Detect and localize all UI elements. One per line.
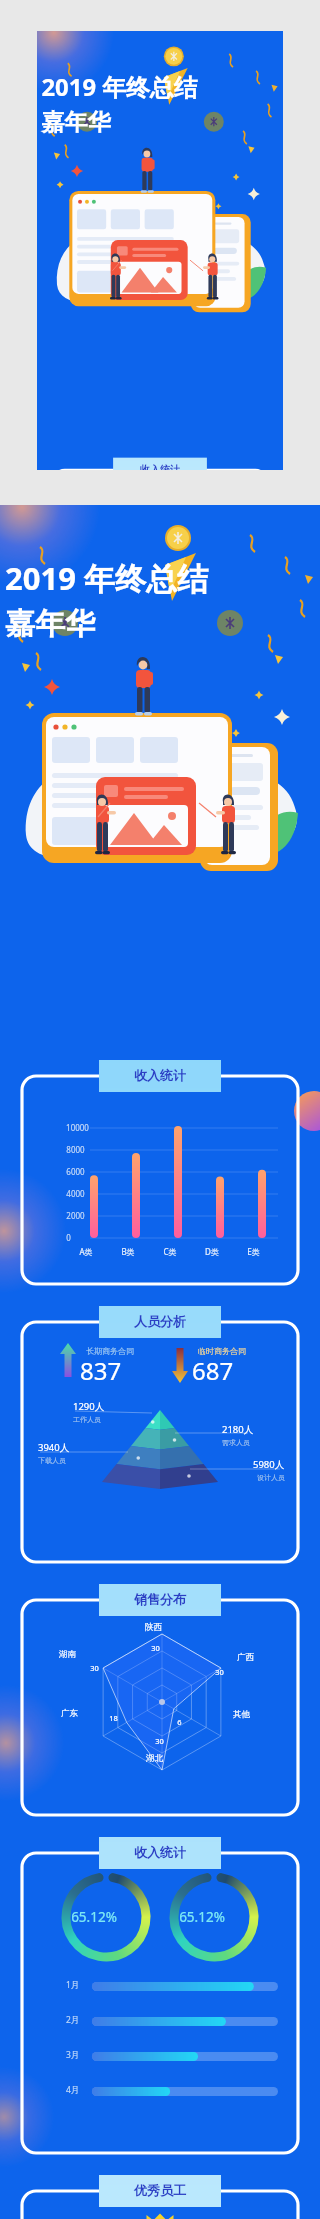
staticText: 长期商务合同	[86, 1346, 134, 1356]
staticText: 嘉年华	[41, 108, 111, 137]
staticText: 销售分布	[99, 1591, 221, 1607]
button[interactable]: 销售分布	[99, 1584, 221, 1616]
staticText: 人员分析	[99, 1313, 221, 1329]
button[interactable]: 人员分析	[99, 1306, 221, 1338]
staticText: 2180人	[222, 1423, 254, 1436]
staticText: 65.12%	[71, 1908, 117, 1926]
staticText: 1290人	[73, 1400, 105, 1413]
button[interactable]: 2019 年终总结	[0, 505, 320, 2219]
staticText: A类	[79, 1246, 93, 1257]
staticText: 30	[155, 1736, 164, 1746]
staticText: 6	[177, 1717, 182, 1727]
staticText: 1月	[66, 1979, 80, 1991]
staticText: 5980人	[253, 1458, 285, 1471]
staticText: 30	[215, 1667, 224, 1677]
staticText: 其他	[233, 1709, 250, 1720]
staticText: 陕西	[145, 1622, 162, 1633]
staticText: 湖北	[146, 1753, 163, 1764]
staticText: 30	[90, 1663, 99, 1673]
staticText: 工作人员	[73, 1415, 101, 1424]
staticText: E类	[247, 1246, 260, 1257]
staticText: 需求人员	[222, 1438, 250, 1447]
staticText: 2019 年终总结	[5, 557, 208, 599]
staticText: 优秀员工	[99, 2182, 221, 2198]
staticText: 收入统计	[99, 1067, 221, 1083]
staticText: 10000	[66, 1122, 89, 1133]
button[interactable]: 2019 年终总结	[37, 31, 283, 470]
staticText: C类	[163, 1246, 177, 1257]
staticText: 嘉年华	[5, 605, 95, 643]
staticText: 837	[80, 1354, 122, 1387]
button[interactable]: 收入统计	[113, 458, 207, 470]
staticText: D类	[205, 1246, 219, 1257]
staticText: 30	[151, 1643, 160, 1653]
staticText: 2019 年终总结	[41, 71, 198, 104]
staticText: 湖南	[59, 1649, 76, 1660]
staticText: 广东	[61, 1708, 78, 1719]
staticText: 下载人员	[38, 1456, 66, 1465]
staticText: 18	[109, 1713, 118, 1723]
staticText: 6000	[66, 1166, 85, 1177]
staticText: 收入统计	[99, 1844, 221, 1860]
staticText: 收入统计	[113, 463, 207, 470]
staticText: 临时商务合同	[198, 1346, 246, 1356]
staticText: 65.12%	[179, 1908, 225, 1926]
staticText: 3月	[66, 2049, 80, 2061]
staticText: 8000	[66, 1144, 85, 1155]
button[interactable]: 优秀员工	[99, 2175, 221, 2207]
staticText: 687	[192, 1354, 234, 1387]
staticText: 3940人	[38, 1441, 70, 1454]
button[interactable]: 收入统计	[99, 1837, 221, 1869]
staticText: 广西	[237, 1652, 254, 1663]
staticText: B类	[121, 1246, 135, 1257]
staticText: 0	[66, 1232, 71, 1243]
staticText: 2000	[66, 1210, 85, 1221]
staticText: 设计人员	[257, 1473, 285, 1482]
button[interactable]: 收入统计	[99, 1060, 221, 1092]
staticText: 2月	[66, 2014, 80, 2026]
staticText: 4000	[66, 1188, 85, 1199]
staticText: 4月	[66, 2084, 80, 2096]
